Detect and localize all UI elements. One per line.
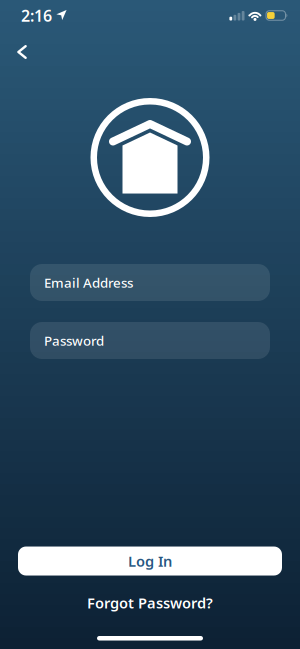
button[interactable]: Forgot Password? bbox=[87, 593, 213, 612]
staticText: Log In bbox=[128, 551, 172, 571]
button[interactable]: Log In bbox=[18, 546, 282, 575]
staticText: 2:16 bbox=[21, 5, 52, 26]
button[interactable]: Back bbox=[9, 37, 35, 67]
button[interactable]: Email Address bbox=[30, 264, 270, 301]
button[interactable]: Password bbox=[30, 322, 270, 359]
staticText: Email Address bbox=[44, 274, 133, 291]
staticText: Password bbox=[44, 332, 104, 349]
staticText: Forgot Password? bbox=[87, 593, 213, 612]
